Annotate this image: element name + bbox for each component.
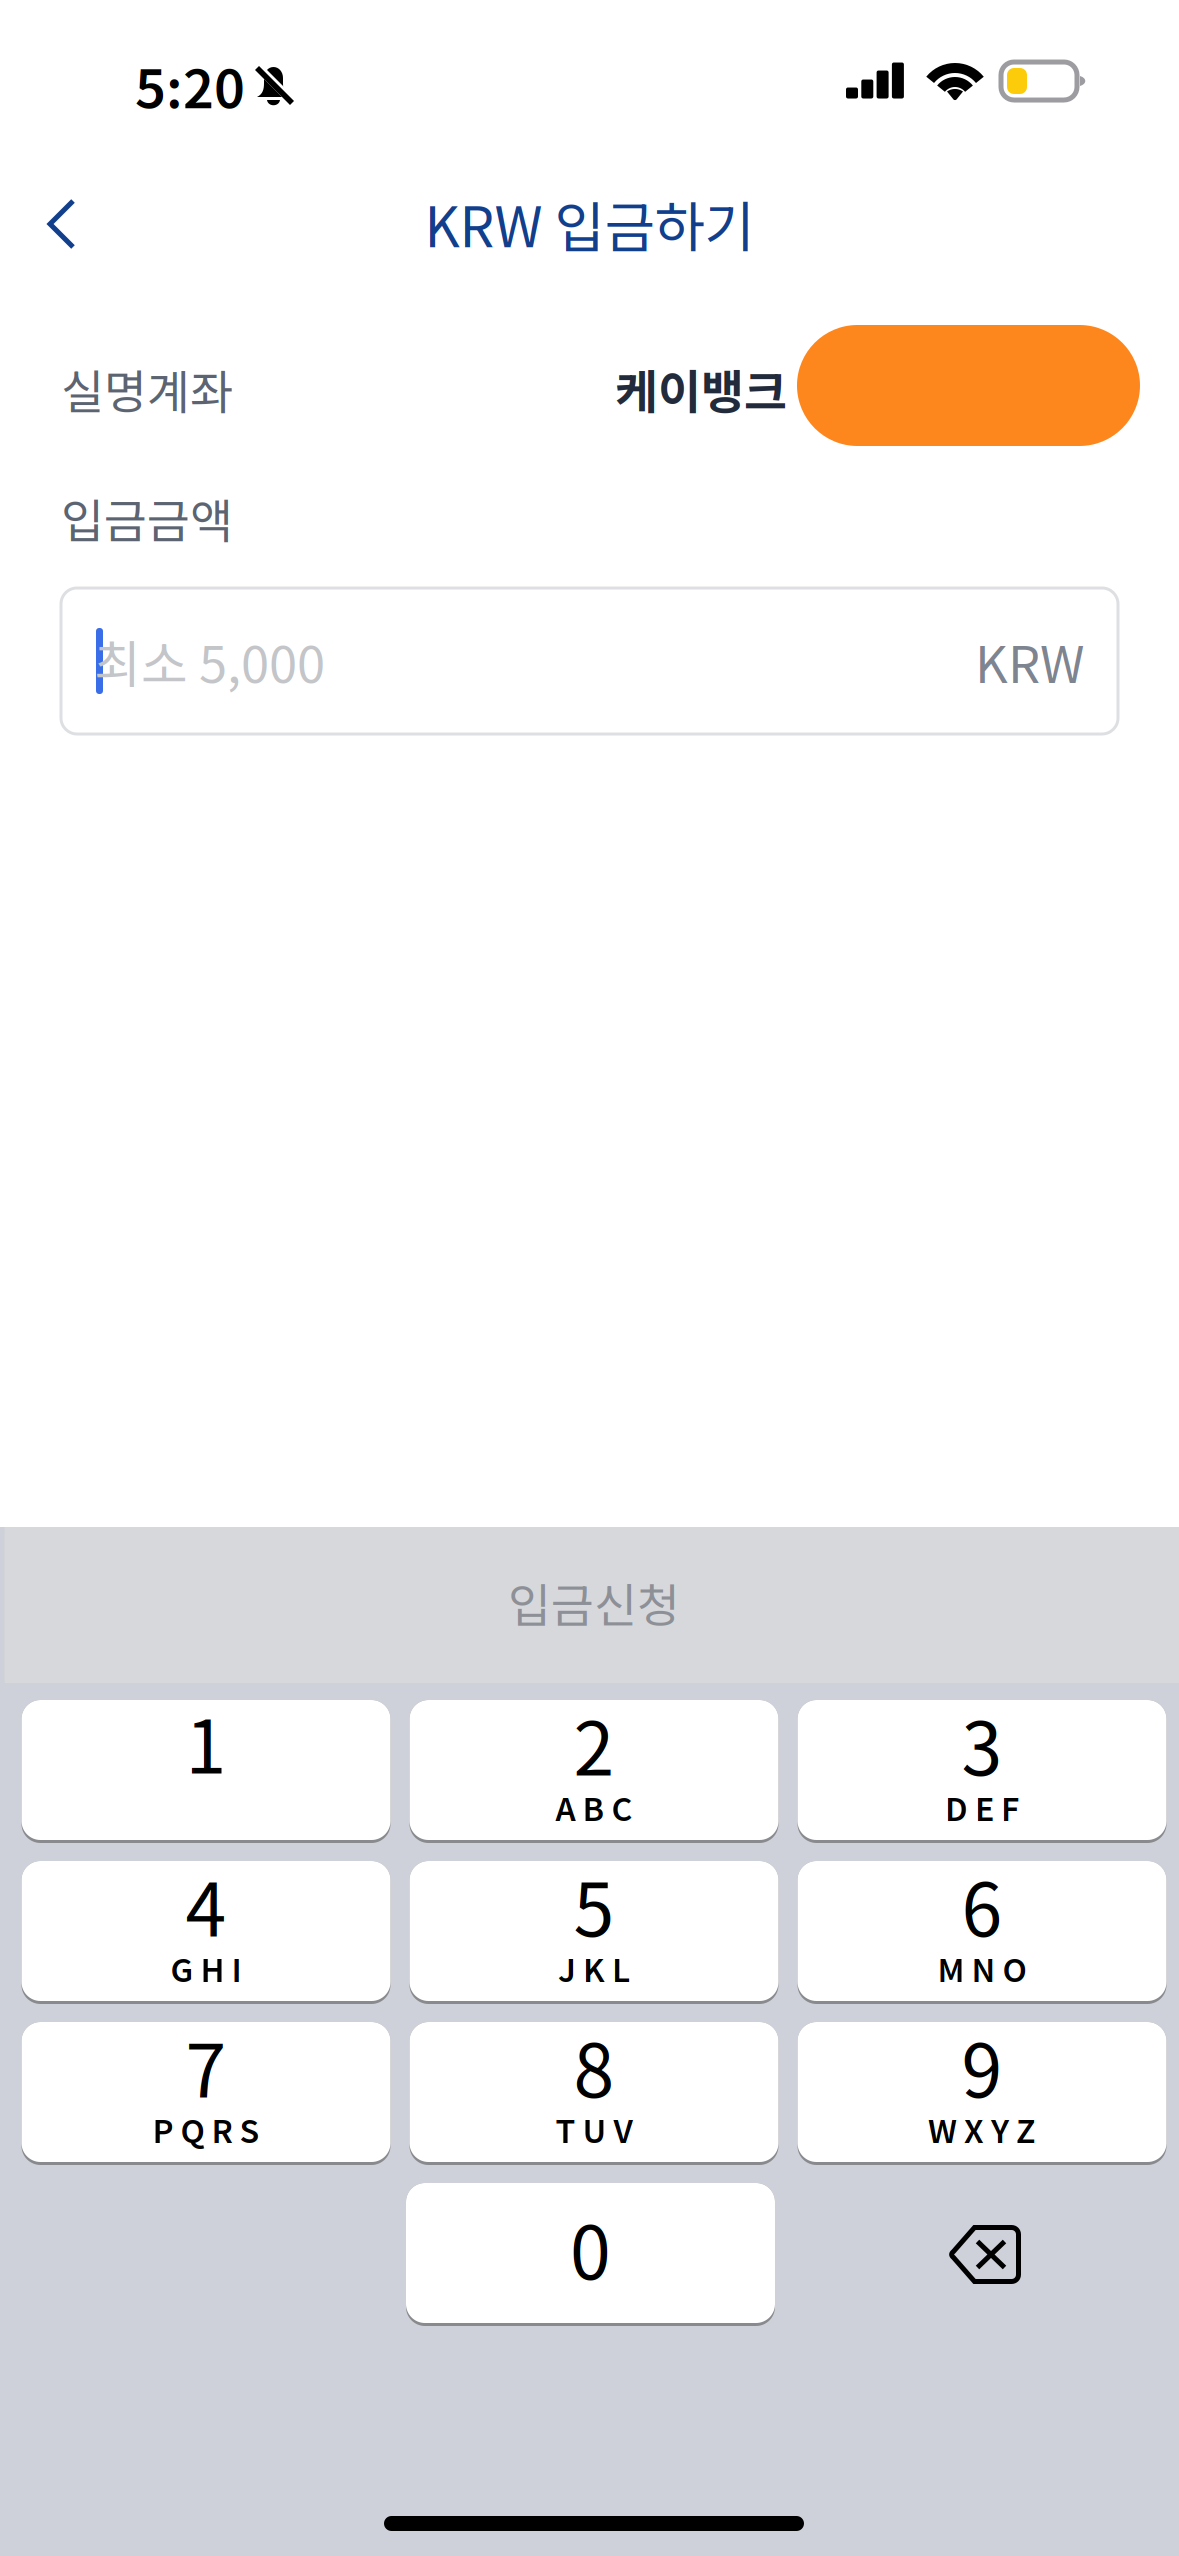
- button[interactable]: 5: [409, 1861, 778, 2004]
- button[interactable]: 3: [797, 1700, 1166, 1843]
- button[interactable]: 9: [797, 2022, 1166, 2165]
- staticText: 6: [961, 1851, 1002, 1958]
- button[interactable]: 2: [409, 1700, 778, 1843]
- staticText: 2: [573, 1690, 614, 1797]
- staticText: 0: [570, 2194, 611, 2301]
- staticText: T U V: [555, 2106, 632, 2152]
- staticText: 1: [185, 1688, 226, 1795]
- button[interactable]: 4: [21, 1861, 390, 2004]
- staticText: W X Y Z: [928, 2106, 1036, 2152]
- staticText: 최소 5,000: [94, 624, 325, 698]
- staticText: 입금신청: [508, 1569, 680, 1636]
- staticText: G H I: [170, 1945, 241, 1991]
- button[interactable]: Delete: [794, 2183, 1170, 2326]
- staticText: J K L: [558, 1945, 630, 1991]
- staticText: KRW 입금하기: [424, 184, 754, 263]
- staticText: P Q R S: [152, 2106, 259, 2152]
- staticText: 8: [573, 2012, 614, 2119]
- button[interactable]: 6: [797, 1861, 1166, 2004]
- button[interactable]: 1: [21, 1700, 390, 1843]
- staticText: 4: [185, 1851, 226, 1958]
- staticText: M N O: [937, 1945, 1026, 1991]
- staticText: A B C: [555, 1784, 632, 1830]
- button[interactable]: 실명계좌: [61, 328, 1118, 450]
- button[interactable]: 최소 5,000: [61, 588, 1118, 734]
- staticText: 케이뱅크: [615, 355, 787, 423]
- staticText: D E F: [945, 1784, 1019, 1830]
- staticText: 9: [961, 2012, 1002, 2119]
- staticText: 입금금액: [61, 484, 233, 552]
- button[interactable]: 7: [21, 2022, 390, 2165]
- staticText: 실명계좌: [61, 355, 233, 423]
- button[interactable]: Back: [0, 176, 121, 280]
- button[interactable]: 8: [409, 2022, 778, 2165]
- staticText: 3: [961, 1690, 1002, 1797]
- staticText: 7: [185, 2012, 226, 2119]
- button[interactable]: 0: [406, 2183, 775, 2326]
- staticText: 5: [573, 1851, 614, 1958]
- staticText: 5:20: [135, 46, 245, 124]
- staticText: KRW: [975, 624, 1084, 698]
